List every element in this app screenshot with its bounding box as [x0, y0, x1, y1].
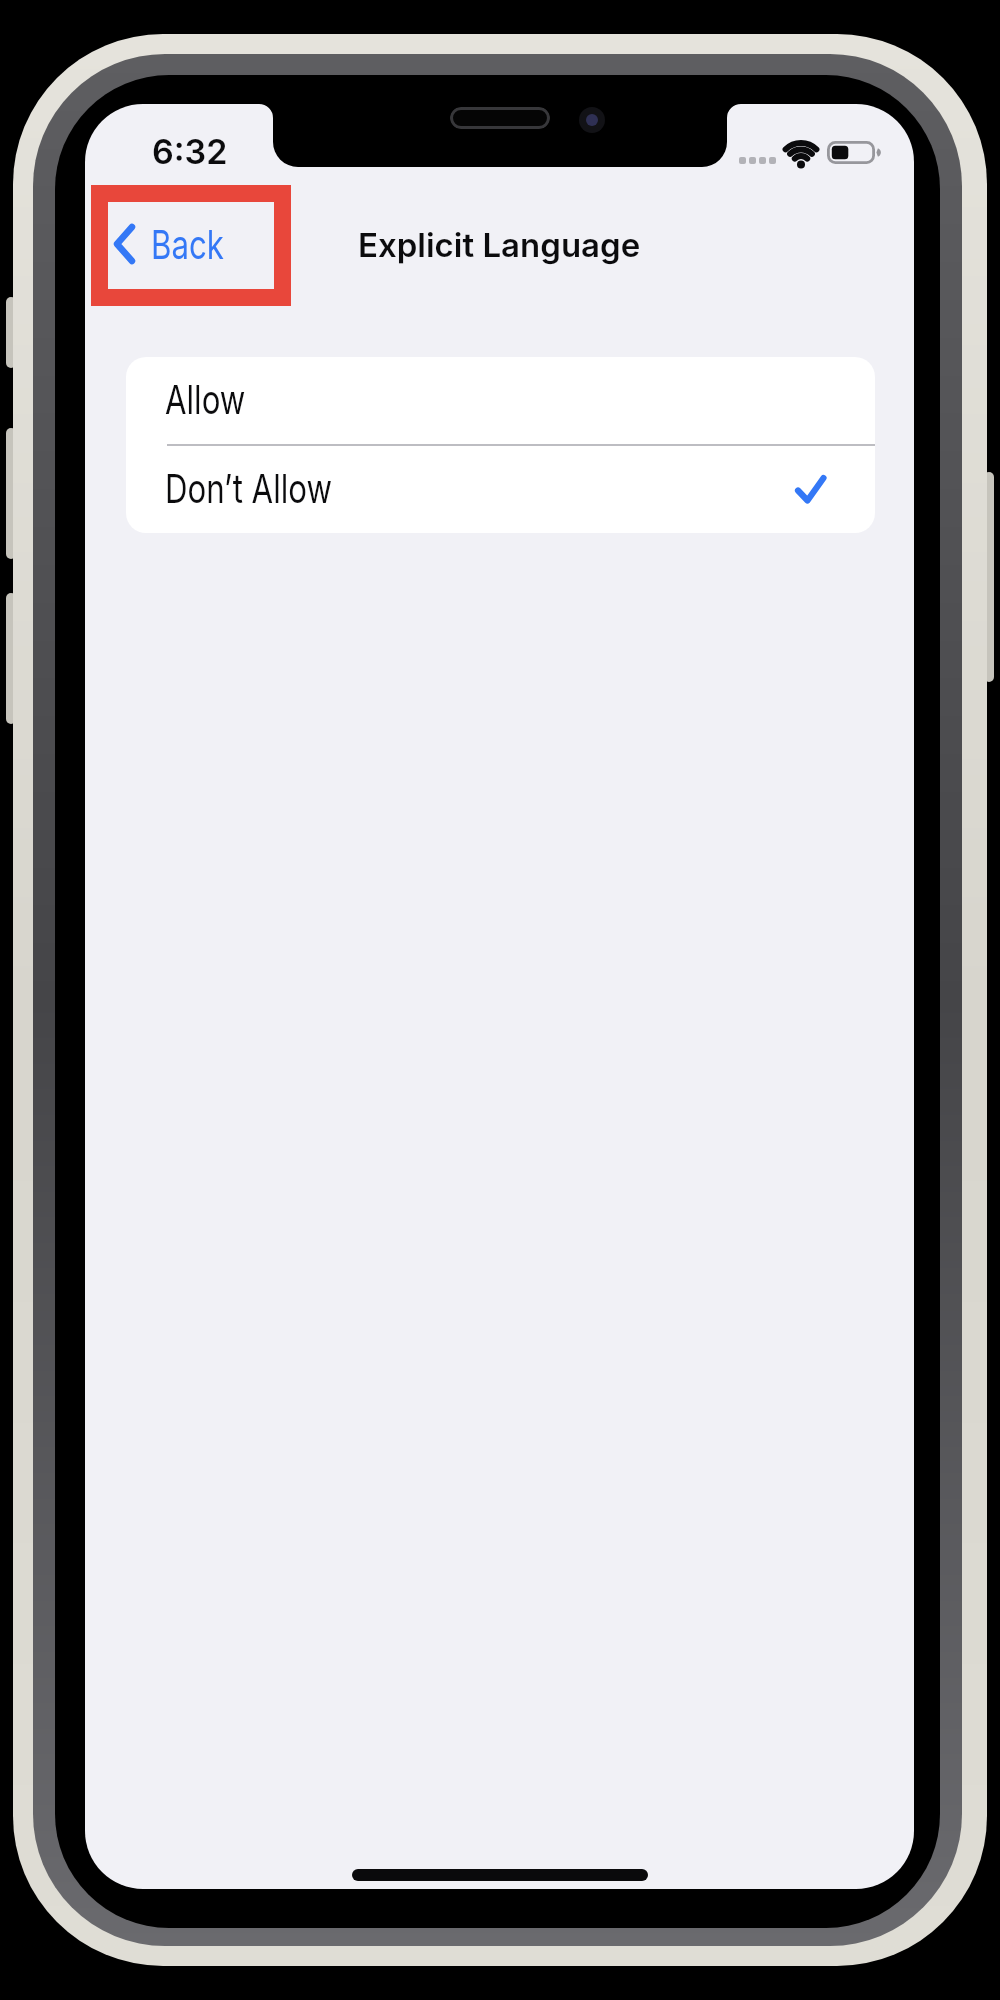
staticText: Allow — [165, 375, 245, 423]
staticText: 6:32 — [152, 131, 228, 172]
button[interactable]: Allow — [126, 357, 875, 444]
staticText: Don’t Allow — [165, 464, 333, 512]
staticText: Back — [151, 220, 224, 266]
staticText: Explicit Language — [358, 225, 641, 265]
button[interactable] — [108, 202, 274, 289]
button[interactable]: Don’t Allow — [126, 446, 875, 533]
